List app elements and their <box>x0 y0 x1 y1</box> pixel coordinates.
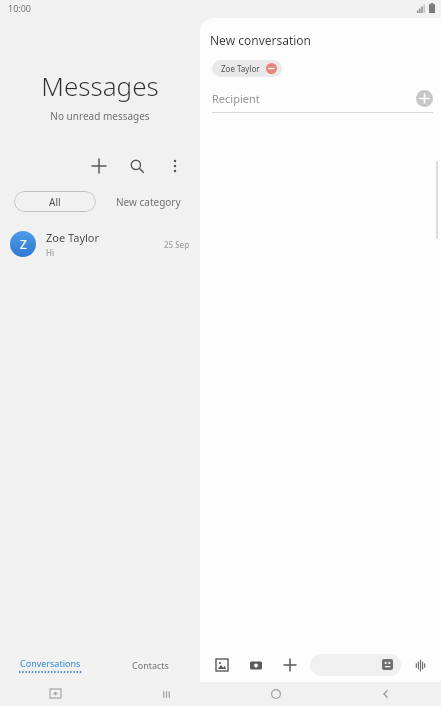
staticText: Zoe Taylor <box>221 63 260 74</box>
button[interactable]: Stickers <box>310 654 401 676</box>
staticText: New category <box>116 195 181 209</box>
button[interactable]: Back <box>331 682 441 706</box>
button[interactable]: Conversations <box>0 648 100 682</box>
button[interactable]: Gallery <box>208 651 236 679</box>
button[interactable]: Camera <box>242 651 270 679</box>
staticText: Recipient <box>212 91 416 106</box>
staticText: No unread messages <box>0 109 200 123</box>
staticText: 10:00 <box>8 2 32 14</box>
other: Remove Zoe Taylor <box>266 63 277 74</box>
staticText: Hi <box>46 247 54 258</box>
button[interactable]: Hide keyboard <box>0 682 111 706</box>
button[interactable]: Voice message <box>407 652 433 678</box>
staticText: Contacts <box>132 659 169 671</box>
staticText: New conversation <box>210 32 312 48</box>
button[interactable]: Zoe Taylor <box>212 60 282 77</box>
button[interactable]: New category <box>116 195 181 209</box>
button[interactable]: Stickers <box>382 659 395 672</box>
staticText: Conversations <box>20 657 81 669</box>
staticText: All <box>49 195 61 209</box>
button[interactable]: More options <box>160 151 190 181</box>
staticText: 25 Sep <box>164 239 190 250</box>
button[interactable]: New conversation <box>84 151 114 181</box>
button[interactable]: Home <box>221 682 331 706</box>
staticText: Messages <box>0 68 200 103</box>
button[interactable]: Search <box>122 151 152 181</box>
button[interactable]: Contacts <box>100 648 200 682</box>
staticText: Zoe Taylor <box>46 230 100 245</box>
button[interactable]: Recents <box>111 682 221 706</box>
button[interactable]: Z <box>0 224 200 264</box>
button[interactable]: All <box>14 191 96 212</box>
staticText: Z <box>20 236 27 252</box>
button[interactable]: Add recipient <box>416 90 433 107</box>
button[interactable]: Add attachment <box>276 651 304 679</box>
